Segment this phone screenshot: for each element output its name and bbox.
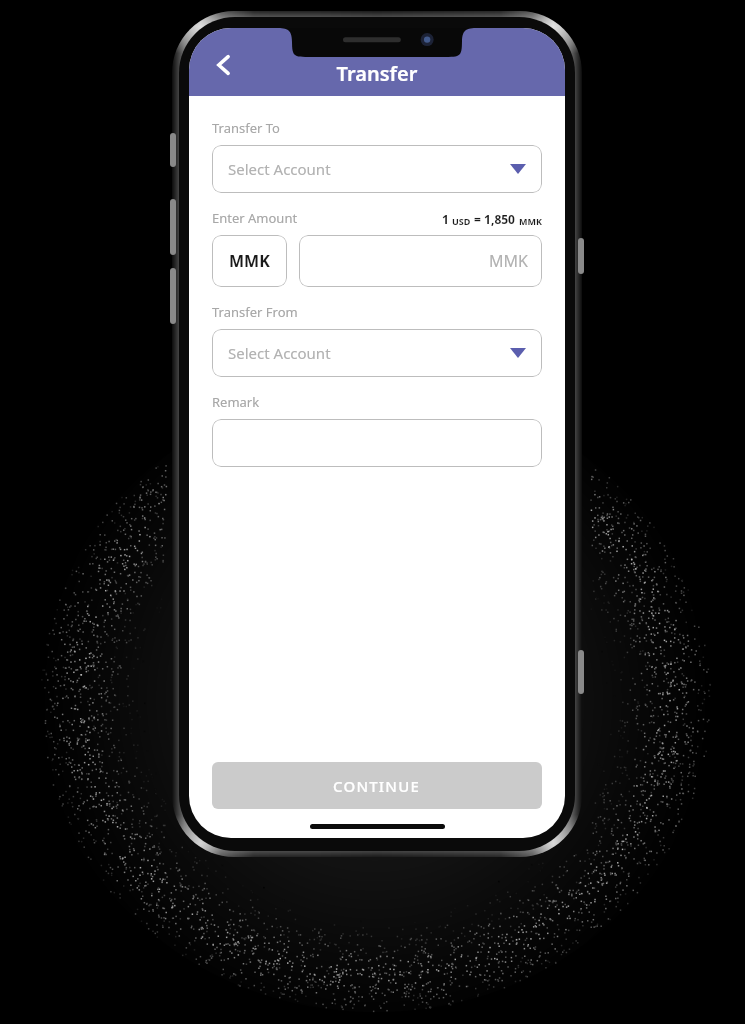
button[interactable]: Select Account — [212, 145, 542, 193]
staticText: CONTINUE — [333, 776, 421, 796]
staticText: = 1,850 — [471, 211, 519, 227]
staticText: Remark — [212, 393, 260, 411]
button[interactable] — [212, 419, 542, 467]
staticText: Transfer From — [212, 303, 298, 321]
button[interactable]: CONTINUE — [212, 762, 542, 809]
button[interactable]: Select Account — [212, 329, 542, 377]
button[interactable]: MMK — [299, 235, 542, 287]
staticText: Transfer To — [212, 119, 280, 137]
staticText: Enter Amount — [212, 209, 442, 227]
staticText: MMK — [519, 215, 542, 227]
staticText: Select Account — [228, 159, 510, 179]
staticText: Select Account — [228, 343, 510, 363]
button[interactable]: Back — [201, 42, 247, 88]
button[interactable]: MMK — [212, 235, 287, 287]
staticText: Transfer — [189, 60, 565, 87]
staticText: MMK — [489, 250, 528, 272]
staticText: USD — [452, 215, 471, 227]
staticText: 1 — [442, 211, 452, 227]
staticText: MMK — [229, 250, 270, 272]
